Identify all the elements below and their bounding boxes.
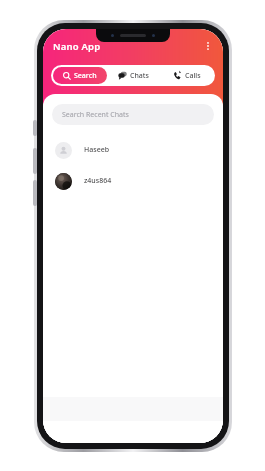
staticText: Chats bbox=[130, 71, 149, 81]
staticText: Calls bbox=[185, 71, 201, 81]
button[interactable]: More options bbox=[199, 37, 217, 55]
button[interactable]: Search Recent Chats bbox=[52, 104, 214, 125]
staticText: Haseeb bbox=[84, 145, 110, 155]
button[interactable]: z4us864 bbox=[43, 168, 223, 194]
staticText: Nano App bbox=[53, 40, 101, 53]
button[interactable]: Calls bbox=[160, 67, 213, 84]
staticText: Search bbox=[74, 71, 97, 81]
button[interactable]: Haseeb bbox=[43, 137, 223, 163]
staticText: z4us864 bbox=[84, 176, 112, 186]
button[interactable]: Search bbox=[53, 67, 107, 84]
staticText: Search Recent Chats bbox=[62, 110, 129, 120]
button[interactable]: Chats bbox=[107, 67, 160, 84]
